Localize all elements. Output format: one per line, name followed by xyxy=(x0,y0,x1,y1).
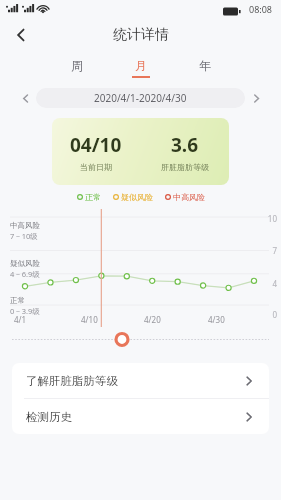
staticText: 正常 xyxy=(85,192,101,202)
staticText: 中高风险 xyxy=(10,221,40,230)
button[interactable]: 2020/4/1-2020/4/30 xyxy=(36,88,245,108)
button[interactable]: 年 xyxy=(190,56,220,80)
staticText: 4/20 xyxy=(144,314,161,325)
staticText: 周 xyxy=(71,58,83,73)
staticText: 疑似风险 xyxy=(10,259,40,268)
button[interactable]: Back xyxy=(6,20,36,50)
staticText: 肝脏脂肪等级 xyxy=(161,162,209,172)
staticText: 统计详情 xyxy=(113,26,169,44)
staticText: 7 xyxy=(265,245,277,256)
button[interactable]: Date slider xyxy=(110,327,134,351)
staticText: 检测历史 xyxy=(26,410,72,424)
button[interactable]: 了解肝脏脂肪等级 xyxy=(12,363,269,398)
button[interactable]: 月 xyxy=(126,56,156,80)
staticText: 3.6 xyxy=(171,132,199,158)
button[interactable]: 周 xyxy=(62,56,92,80)
staticText: 4/10 xyxy=(81,314,98,325)
staticText: 当前日期 xyxy=(80,162,112,172)
staticText: 7－10级 xyxy=(10,231,38,241)
staticText: 4/30 xyxy=(208,314,225,325)
staticText: 了解肝脏脂肪等级 xyxy=(26,374,118,388)
staticText: 4/1 xyxy=(14,314,27,325)
staticText: 正常 xyxy=(10,296,25,305)
staticText: 疑似风险 xyxy=(121,192,153,202)
button[interactable]: 检测历史 xyxy=(12,399,269,434)
staticText: 0－3.9级 xyxy=(10,306,40,316)
button[interactable]: Previous xyxy=(14,87,36,109)
staticText: 2020/4/1-2020/4/30 xyxy=(94,91,187,105)
staticText: 月 xyxy=(135,58,147,73)
staticText: 10 xyxy=(265,213,277,224)
staticText: 年 xyxy=(199,58,211,73)
staticText: 0 xyxy=(265,309,277,320)
staticText: 中高风险 xyxy=(173,192,205,202)
staticText: 04/10 xyxy=(70,132,122,158)
staticText: 4 xyxy=(265,278,277,289)
button[interactable]: Next xyxy=(245,87,267,109)
staticText: 08:08 xyxy=(249,3,273,15)
staticText: 4－6.9级 xyxy=(10,269,40,279)
